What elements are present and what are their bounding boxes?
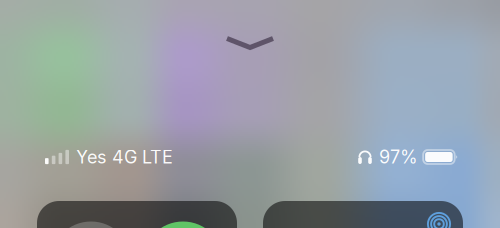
- staticText: 97%: [379, 146, 418, 168]
- button[interactable]: Connectivity controls: [37, 201, 237, 228]
- staticText: Yes 4G LTE: [76, 146, 173, 168]
- button[interactable]: AirDrop: [263, 201, 463, 228]
